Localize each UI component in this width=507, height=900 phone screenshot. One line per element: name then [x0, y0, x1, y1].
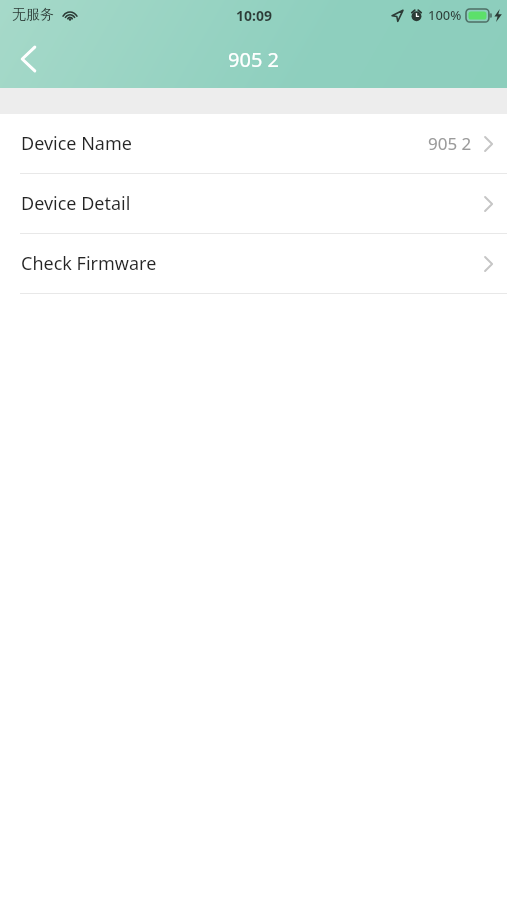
staticText: Device Name — [21, 131, 132, 156]
button[interactable]: Check Firmware — [0, 234, 507, 293]
staticText: Check Firmware — [21, 251, 157, 276]
button[interactable]: Device Name — [0, 114, 507, 173]
staticText: Device Detail — [21, 191, 131, 216]
staticText: 无服务 — [12, 6, 54, 24]
button[interactable]: Back — [0, 30, 56, 88]
staticText: 100% — [428, 6, 462, 24]
button[interactable]: Device Detail — [0, 174, 507, 233]
staticText: 905 2 — [228, 46, 279, 73]
staticText: 905 2 — [428, 132, 472, 155]
staticText: 10:09 — [236, 6, 272, 25]
